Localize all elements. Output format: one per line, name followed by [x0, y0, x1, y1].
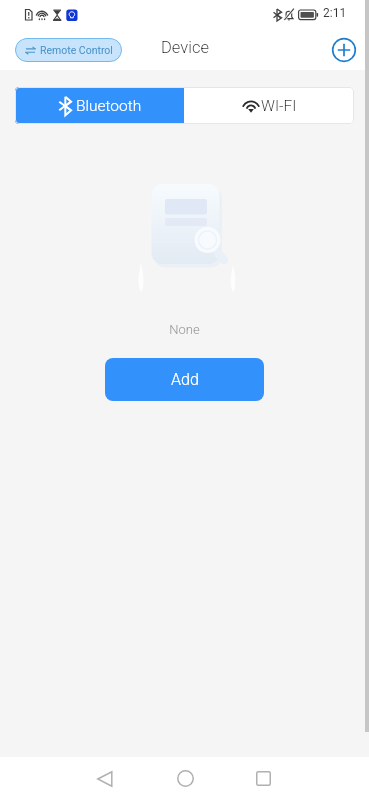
staticText: 2:11 — [323, 6, 347, 20]
button[interactable]: Add device — [328, 34, 360, 66]
button[interactable]: Remote Control — [15, 38, 122, 62]
staticText: Bluetooth — [76, 97, 142, 115]
button[interactable]: Back — [83, 757, 127, 800]
button[interactable]: Bluetooth — [15, 87, 184, 124]
button[interactable]: WI-FI — [184, 87, 354, 124]
button[interactable]: Home — [163, 757, 207, 800]
staticText: WI-FI — [261, 97, 297, 115]
staticText: Add — [171, 370, 199, 389]
button[interactable]: Add — [105, 358, 264, 401]
staticText: Remote Control — [40, 44, 113, 56]
staticText: None — [0, 322, 369, 337]
button[interactable]: Recent apps — [241, 757, 285, 800]
staticText: Device — [161, 38, 209, 57]
